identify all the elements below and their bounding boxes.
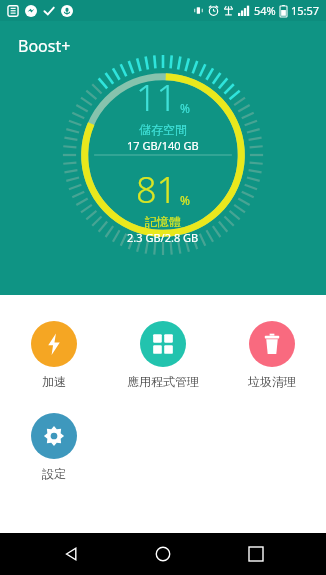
button[interactable]: Home — [141, 533, 185, 575]
button[interactable]: 設定 — [0, 409, 108, 485]
staticText: 應用程式管理 — [127, 374, 199, 389]
staticText: 17 GB/140 GB — [127, 138, 199, 153]
staticText: 設定 — [42, 466, 66, 481]
button[interactable]: 垃圾清理 — [217, 317, 326, 393]
staticText: 2.3 GB/2.8 GB — [127, 230, 199, 245]
staticText: 儲存空間 — [139, 122, 187, 137]
staticText: 81 — [136, 165, 178, 214]
staticText: 垃圾清理 — [248, 374, 296, 389]
staticText: 記憶體 — [145, 214, 181, 229]
staticText: % — [180, 192, 190, 208]
button[interactable]: Recents — [234, 533, 278, 575]
button[interactable]: Back — [49, 533, 93, 575]
staticText: 加速 — [42, 374, 66, 389]
button[interactable]: 加速 — [0, 317, 108, 393]
staticText: 15:57 — [291, 3, 320, 18]
staticText: 54% — [254, 3, 276, 18]
staticText: 11 — [136, 73, 178, 122]
staticText: Boost+ — [18, 35, 71, 57]
staticText: % — [180, 100, 190, 116]
button[interactable]: 應用程式管理 — [108, 317, 217, 393]
